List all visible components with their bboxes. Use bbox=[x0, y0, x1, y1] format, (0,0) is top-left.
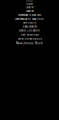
staticText: New Jersey Buck bbox=[16, 41, 43, 45]
staticText: Location bbox=[25, 10, 33, 13]
staticText: Wednesday 12 May 2012 bbox=[15, 17, 44, 20]
staticText: Location bbox=[25, 6, 33, 9]
staticText: Location bbox=[26, 0, 33, 2]
staticText: Wednesday 12 May 2012 bbox=[18, 14, 41, 16]
staticText: Band Location bbox=[23, 21, 36, 24]
staticText: Band Location bbox=[22, 25, 36, 28]
staticText: New Jersey Buck bbox=[17, 37, 41, 40]
staticText: Band Location bbox=[19, 29, 40, 32]
staticText: Location bbox=[26, 3, 33, 5]
staticText: New Jersey Buck bbox=[20, 33, 38, 36]
